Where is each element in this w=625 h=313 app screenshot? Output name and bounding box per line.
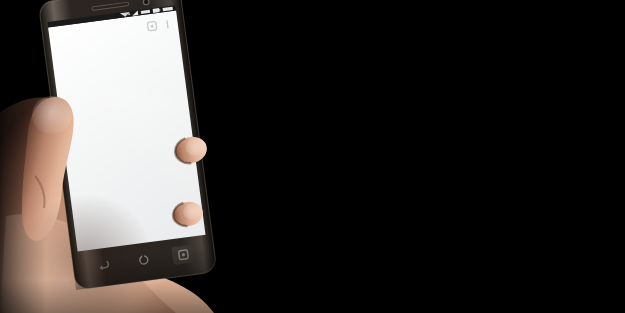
button[interactable]: Hand holding a smartphone with a blank w… [0,0,625,313]
